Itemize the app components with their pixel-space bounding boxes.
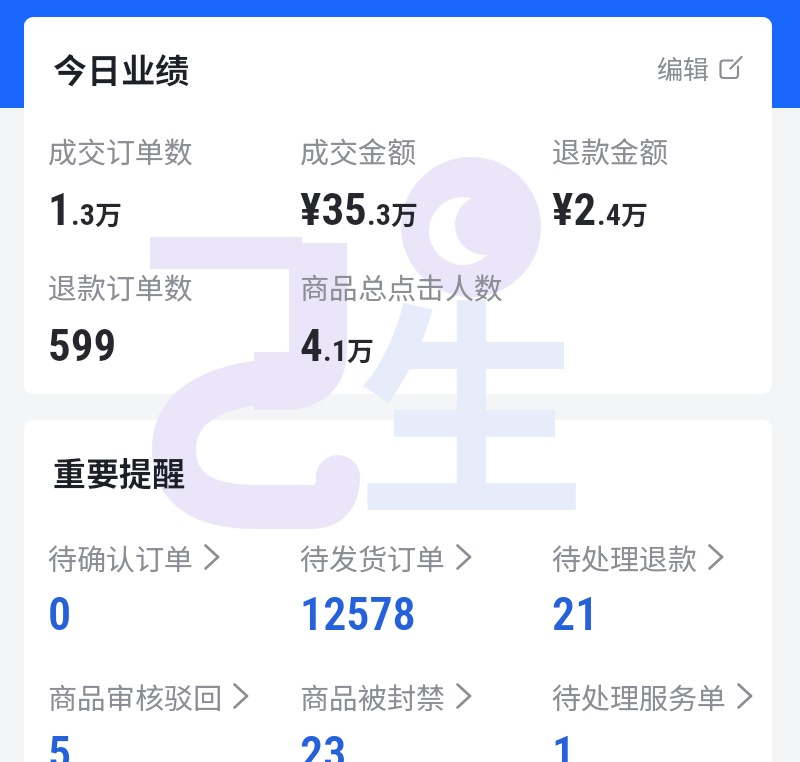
staticText: 5 <box>48 726 72 762</box>
staticText: 599 <box>48 319 117 372</box>
button[interactable]: 待发货订单 <box>300 536 473 641</box>
button[interactable]: 待处理服务单 <box>552 675 754 762</box>
staticText: .3万 <box>71 194 122 233</box>
staticText: 1 <box>48 183 71 236</box>
other: 编辑 <box>719 55 743 81</box>
staticText: 待发货订单 <box>300 536 446 578</box>
staticText: 商品总点击人数 <box>300 265 504 307</box>
staticText: .3万 <box>367 194 418 233</box>
button[interactable]: 商品审核驳回 <box>48 675 250 762</box>
staticText: 商品被封禁 <box>300 675 446 717</box>
button[interactable]: 待确认订单 <box>48 536 221 641</box>
staticText: 商品审核驳回 <box>48 675 223 717</box>
staticText: 21 <box>552 587 599 641</box>
staticText: 编辑 <box>657 49 710 87</box>
staticText: 成交金额 <box>300 129 417 171</box>
staticText: .1万 <box>323 330 374 369</box>
staticText: 12578 <box>300 587 416 641</box>
staticText: 待处理退款 <box>552 536 698 578</box>
staticText: 0 <box>48 587 72 641</box>
staticText: 4 <box>300 319 323 372</box>
staticText: ¥2 <box>552 183 597 236</box>
staticText: 待确认订单 <box>48 536 194 578</box>
button[interactable]: 编辑 <box>647 43 743 93</box>
staticText: .4万 <box>597 194 648 233</box>
staticText: 23 <box>300 726 347 762</box>
staticText: ¥35 <box>300 183 367 236</box>
staticText: 生 <box>356 229 587 562</box>
button[interactable]: 商品被封禁 <box>300 675 473 762</box>
staticText: 1 <box>552 726 576 762</box>
staticText: 今日业绩 <box>53 44 189 93</box>
staticText: 成交订单数 <box>48 129 194 171</box>
button[interactable]: 待处理退款 <box>552 536 725 641</box>
staticText: 退款金额 <box>552 129 669 171</box>
staticText: 待处理服务单 <box>552 675 727 717</box>
staticText: 重要提醒 <box>53 448 185 496</box>
staticText: 退款订单数 <box>48 265 194 307</box>
